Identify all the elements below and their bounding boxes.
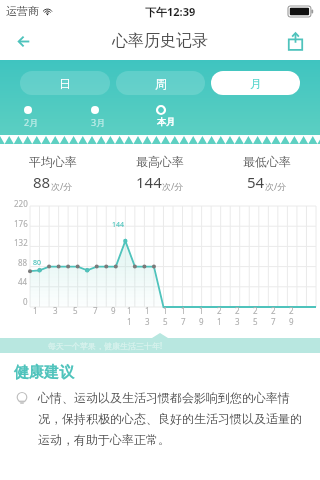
staticText: 5 xyxy=(73,305,78,316)
staticText: 次/分 xyxy=(162,180,184,192)
button[interactable]: Back xyxy=(8,24,42,58)
staticText: 23 xyxy=(235,305,244,327)
staticText: 88 xyxy=(33,172,51,192)
staticText: 本月 xyxy=(157,116,175,127)
button[interactable]: 周 xyxy=(116,71,205,95)
staticText: 220 xyxy=(14,198,28,209)
staticText: 9 xyxy=(111,305,116,316)
staticText: 1 xyxy=(33,305,38,316)
staticText: 44 xyxy=(18,276,28,287)
staticText: 11 xyxy=(127,305,136,327)
staticText: 健康建议 xyxy=(14,363,74,382)
staticText: 3 xyxy=(53,305,58,316)
staticText: 次/分 xyxy=(265,180,287,192)
staticText: 月 xyxy=(250,76,262,91)
staticText: 运营商 xyxy=(6,4,39,18)
staticText: 25 xyxy=(253,305,262,327)
staticText: 29 xyxy=(289,305,298,327)
staticText: 3月 xyxy=(91,116,106,128)
staticText: 心情、运动以及生活习惯都会影响到您的心率情况，保持积极的心态、良好的生活习惯以及… xyxy=(38,390,306,447)
staticText: 2月 xyxy=(24,116,39,128)
staticText: 21 xyxy=(217,305,226,327)
staticText: 次/分 xyxy=(51,180,73,192)
staticText: 最低心率 xyxy=(243,154,291,169)
staticText: 7 xyxy=(93,305,98,316)
button[interactable]: Share xyxy=(278,24,312,58)
staticText: 13 xyxy=(145,305,154,327)
staticText: 27 xyxy=(271,305,280,327)
staticText: 平均心率 xyxy=(29,154,77,169)
staticText: 54 xyxy=(247,172,265,192)
staticText: 144 xyxy=(112,220,125,230)
button[interactable]: 月 xyxy=(211,71,300,95)
staticText: 144 xyxy=(136,172,162,192)
staticText: 心率历史记录 xyxy=(112,31,208,51)
staticText: 88 xyxy=(18,257,28,268)
staticText: 日 xyxy=(59,76,71,91)
staticText: 最高心率 xyxy=(136,154,184,169)
staticText: 80 xyxy=(33,258,42,268)
staticText: 15 xyxy=(163,305,172,327)
staticText: 132 xyxy=(14,237,28,248)
staticText: 19 xyxy=(199,305,208,327)
staticText: 176 xyxy=(14,218,28,229)
button[interactable]: 日 xyxy=(20,71,110,95)
staticText: 17 xyxy=(181,305,190,327)
staticText: 周 xyxy=(155,76,167,91)
staticText: 下午12:39 xyxy=(145,4,196,19)
staticText: 每天一个苹果，健康生活三十年! xyxy=(48,340,163,351)
staticText: 0 xyxy=(23,296,28,307)
